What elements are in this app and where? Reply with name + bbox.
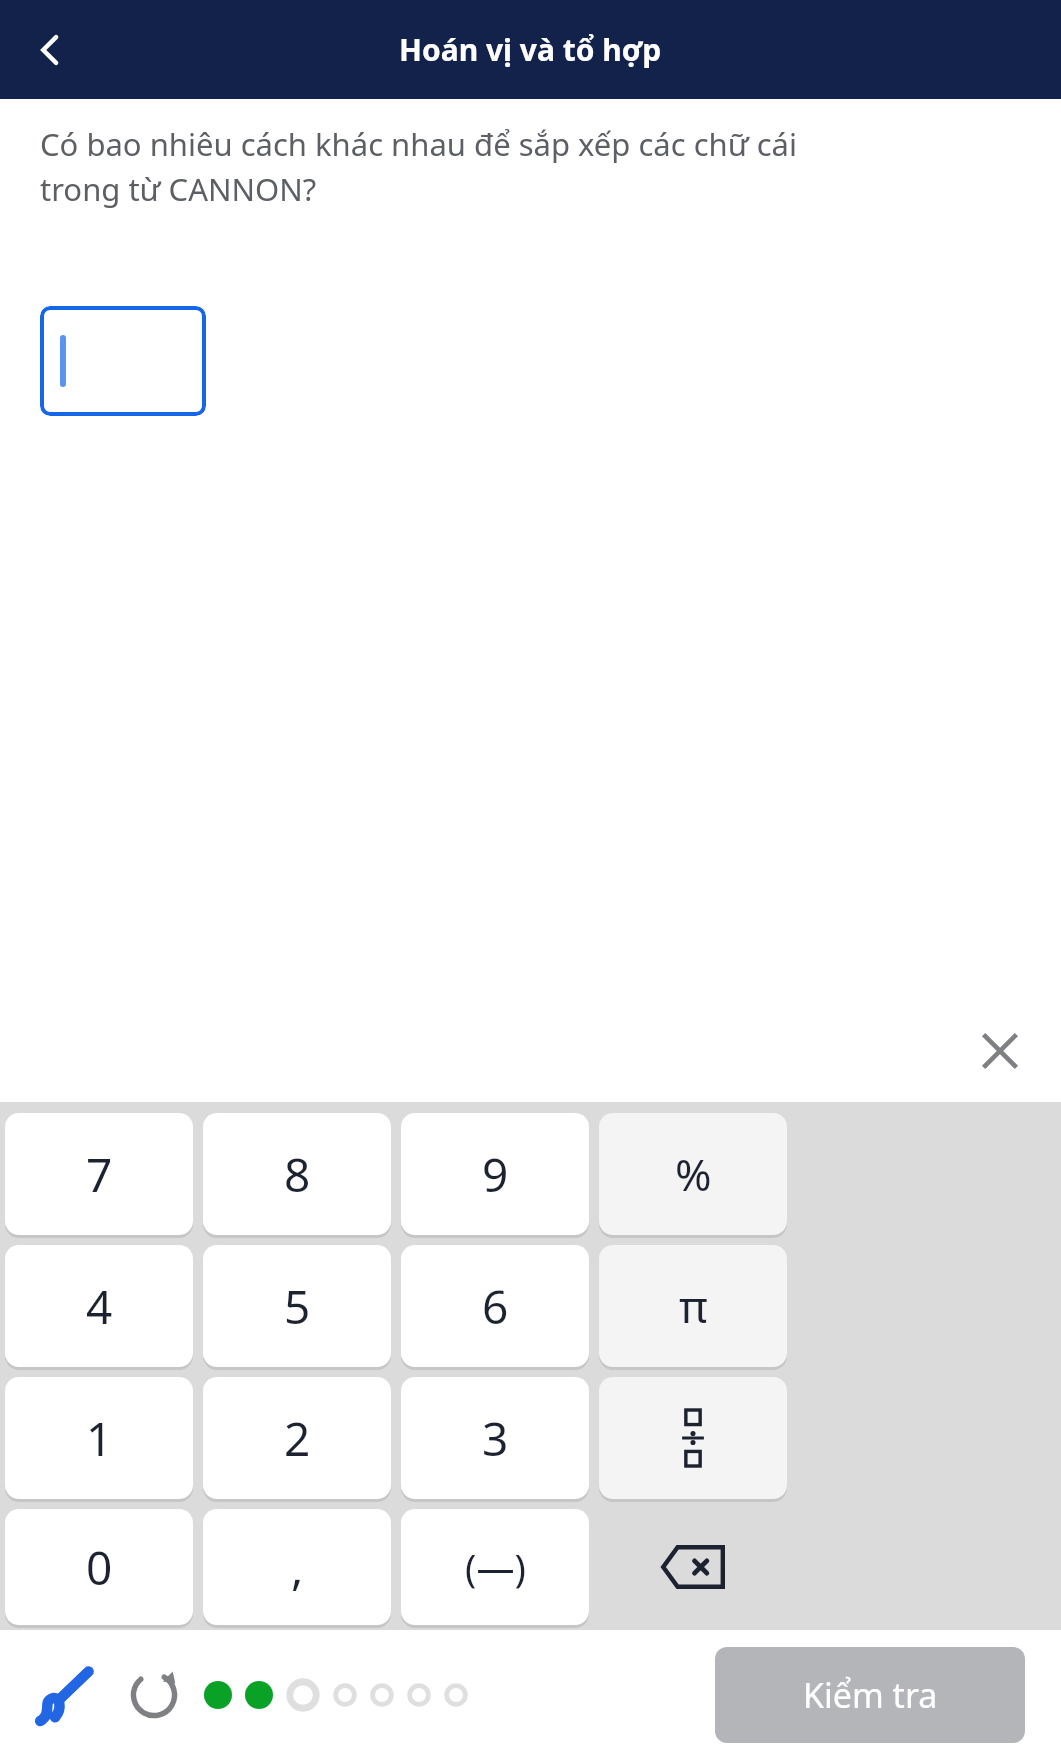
button[interactable]: 1 [5, 1377, 193, 1499]
button[interactable]: Clear [963, 1014, 1037, 1088]
button[interactable]: % [599, 1113, 787, 1235]
staticText: 0 [86, 1536, 113, 1599]
staticText: 5 [284, 1275, 311, 1338]
staticText: % [675, 1144, 712, 1204]
button[interactable]: 4 [5, 1245, 193, 1367]
button[interactable] [599, 1377, 787, 1499]
staticText: Có bao nhiêu cách khác nhau để sắp xếp c… [40, 123, 881, 210]
staticText: 4 [86, 1275, 113, 1338]
button[interactable]: 7 [5, 1113, 193, 1235]
button[interactable]: Draw [22, 1652, 108, 1738]
button[interactable]: 2 [203, 1377, 391, 1499]
button[interactable]: Kiểm tra [715, 1647, 1025, 1743]
button[interactable]: Backspace [594, 1504, 792, 1630]
staticText: (—) [465, 1541, 526, 1593]
staticText: π [679, 1276, 708, 1336]
staticText: 6 [482, 1275, 509, 1338]
button[interactable]: , [203, 1509, 391, 1625]
button[interactable]: 3 [401, 1377, 589, 1499]
staticText: 7 [86, 1143, 113, 1206]
staticText: , [291, 1536, 304, 1599]
staticText: 2 [284, 1407, 311, 1470]
button[interactable]: Reset [118, 1659, 190, 1731]
button[interactable]: Back [14, 14, 86, 86]
button[interactable]: 5 [203, 1245, 391, 1367]
button[interactable]: 9 [401, 1113, 589, 1235]
button[interactable]: 6 [401, 1245, 589, 1367]
button[interactable]: 8 [203, 1113, 391, 1235]
staticText: Hoán vị và tổ hợp [399, 29, 662, 70]
staticText: 8 [284, 1143, 311, 1206]
button[interactable]: π [599, 1245, 787, 1367]
staticText: Kiểm tra [803, 1672, 938, 1718]
staticText: 3 [482, 1407, 509, 1470]
button[interactable]: (—) [401, 1509, 589, 1625]
button[interactable] [40, 306, 206, 416]
staticText: 1 [86, 1407, 113, 1470]
staticText: 9 [482, 1143, 509, 1206]
button[interactable]: 0 [5, 1509, 193, 1625]
